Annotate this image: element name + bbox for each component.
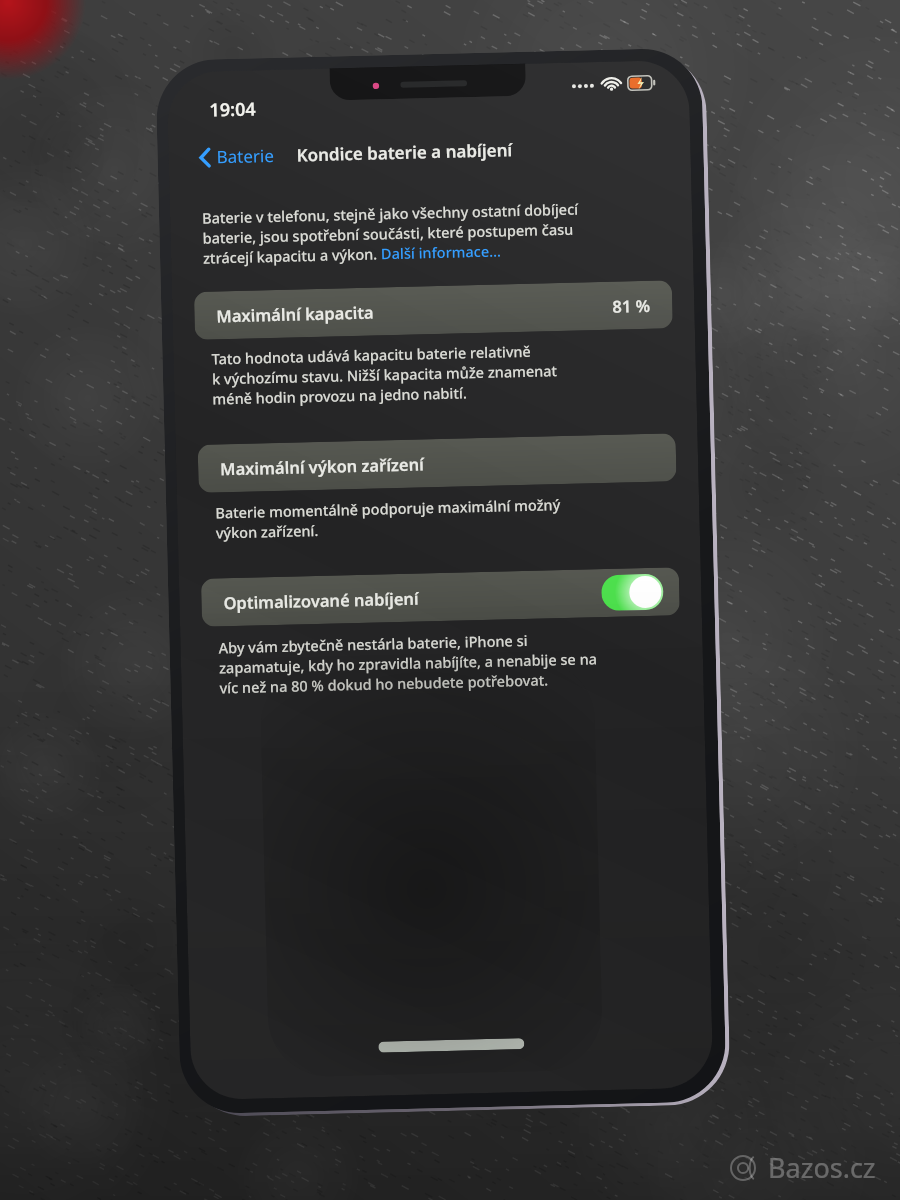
button[interactable]: Maximální výkon zařízení [198,433,677,493]
staticText: Baterie [216,144,275,168]
staticText: výkon zařízení. [215,520,319,542]
staticText: Aby vám zbytečně nestárla baterie, iPhon… [218,630,529,657]
button[interactable]: Baterie [194,138,279,175]
staticText: baterie, jsou spotřební součásti, které … [202,219,574,248]
staticText: Maximální kapacita [216,301,375,326]
button[interactable]: Další informace… [381,240,501,263]
staticText: k výchozímu stavu. Nižší kapacita může z… [212,360,558,388]
staticText: Tato hodnota udává kapacitu baterie rela… [211,341,532,368]
staticText: Baterie momentálně podporuje maximální m… [215,494,561,522]
button[interactable]: Optimalizované nabíjení zapnuto [601,574,664,611]
button[interactable]: Maximální kapacita [194,280,673,340]
staticText: Bazos.cz [768,1149,876,1186]
staticText: zapamatuje, kdy ho zpravidla nabíjíte, a… [219,648,597,677]
button[interactable]: Optimalizované nabíjení [201,567,680,627]
staticText: Maximální výkon zařízení [220,452,424,479]
staticText: méně hodin provozu na jedno nabití. [212,382,468,408]
staticText: Optimalizované nabíjení [223,586,420,613]
staticText: Baterie v telefonu, stejně jako všechny … [202,198,579,228]
staticText: víc než na 80 % dokud ho nebudete potřeb… [219,669,549,697]
staticText: Kondice baterie a nabíjení [296,138,513,166]
staticText: ztrácejí kapacitu a výkon. [203,243,381,268]
staticText: 81 % [612,294,651,317]
staticText: 19:04 [209,96,257,122]
